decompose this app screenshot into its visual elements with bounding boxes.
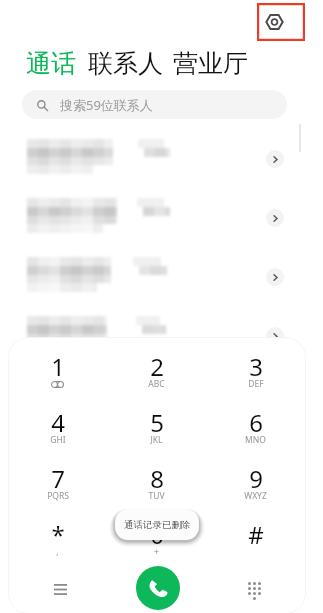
staticText: MNO (245, 434, 266, 446)
staticText: * (51, 518, 65, 551)
staticText: TUV (148, 490, 165, 502)
button[interactable]: 8 (107, 462, 206, 518)
button[interactable]: Call (136, 566, 180, 610)
staticText: , (56, 546, 59, 558)
staticText: 营业厅 (173, 48, 248, 79)
staticText: GHI (50, 434, 66, 446)
button[interactable]: 营业厅 (173, 48, 248, 79)
button[interactable]: 0 (107, 518, 206, 574)
button[interactable]: 5 (107, 406, 206, 462)
button[interactable]: Settings (257, 3, 305, 41)
staticText: JKL (150, 434, 163, 446)
button[interactable]: 3 (206, 350, 305, 406)
button[interactable]: 搜索59位联系人 (22, 90, 287, 119)
staticText: 8 (150, 462, 164, 495)
staticText: ABC (148, 378, 165, 390)
staticText: 6 (249, 406, 263, 439)
button[interactable] (0, 130, 323, 189)
button[interactable]: 2 (107, 350, 206, 406)
staticText: 9 (249, 462, 263, 495)
button[interactable]: 联系人 (88, 48, 163, 79)
staticText: 4 (51, 406, 65, 439)
staticText: 5 (150, 406, 164, 439)
button[interactable]: 7 (8, 462, 107, 518)
button[interactable]: * (8, 518, 107, 574)
staticText: 通话 (26, 48, 76, 79)
button[interactable] (0, 189, 323, 248)
staticText: # (248, 518, 264, 551)
button[interactable] (0, 307, 323, 366)
staticText: 通话记录已删除 (124, 519, 191, 531)
button[interactable]: 4 (8, 406, 107, 462)
staticText: 2 (150, 350, 164, 383)
staticText: 联系人 (88, 48, 163, 79)
button[interactable]: 6 (206, 406, 305, 462)
staticText: 1 (51, 350, 65, 383)
staticText: PQRS (47, 490, 69, 502)
button[interactable]: 9 (206, 462, 305, 518)
button[interactable]: # (206, 518, 305, 574)
button[interactable] (0, 248, 323, 307)
button[interactable]: 通话 (26, 48, 76, 79)
button[interactable]: Dialpad (234, 569, 274, 609)
staticText: + (154, 546, 159, 558)
button[interactable]: 1 (8, 350, 107, 406)
staticText: DEF (248, 378, 264, 390)
staticText: WXYZ (244, 490, 267, 502)
staticText: 搜索59位联系人 (60, 96, 153, 114)
staticText: 3 (249, 350, 263, 383)
staticText: 0 (150, 518, 164, 551)
button[interactable]: Call log menu (40, 569, 80, 609)
staticText: 7 (51, 462, 65, 495)
